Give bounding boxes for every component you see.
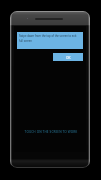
button[interactable]: Swipe down from the top of the screen to… — [17, 32, 83, 49]
staticText: Swipe down from the top of the screen to… — [19, 34, 78, 43]
staticText: TOUCH ON THE SCREEN TO WORK — [15, 130, 87, 134]
staticText: OK — [66, 56, 71, 60]
button[interactable]: OK — [53, 53, 83, 61]
